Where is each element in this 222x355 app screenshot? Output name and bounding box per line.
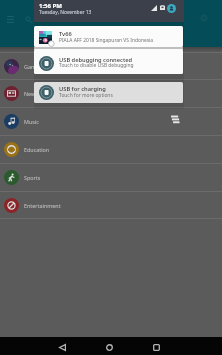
staticText: Music xyxy=(24,118,39,125)
button[interactable]: Music xyxy=(0,107,222,135)
button[interactable]: Recent apps xyxy=(147,338,165,355)
staticText: Touch to disable USB debugging xyxy=(59,62,134,69)
button[interactable]: Sort xyxy=(167,111,183,127)
button[interactable]: Tv66 xyxy=(34,26,183,47)
button[interactable]: User profile xyxy=(167,4,176,13)
staticText: Tuesday, November 13 xyxy=(39,9,92,16)
button[interactable]: Search xyxy=(21,12,36,27)
staticText: PIALA AFF 2018 Singapuran VS Indonesia xyxy=(59,37,154,44)
button[interactable]: Home xyxy=(100,338,118,355)
button[interactable]: Entertainment xyxy=(0,191,222,219)
staticText: Sports xyxy=(24,174,41,181)
button[interactable]: Back xyxy=(53,338,71,355)
button[interactable]: Education xyxy=(0,135,222,163)
button[interactable]: Sports xyxy=(0,163,222,191)
staticText: USB for charging xyxy=(59,85,106,93)
staticText: Games xyxy=(24,63,42,70)
staticText: Tv66 xyxy=(59,30,72,38)
staticText: Entertainment xyxy=(24,202,61,209)
button[interactable]: USB debugging connected xyxy=(34,49,183,74)
staticText: USB debugging connected xyxy=(59,56,133,64)
button[interactable]: Games xyxy=(0,52,222,80)
staticText: News xyxy=(24,90,38,97)
button[interactable]: Open navigation drawer xyxy=(3,12,18,27)
staticText: Education xyxy=(24,146,50,153)
staticText: Touch for more options xyxy=(59,92,113,99)
button[interactable]: USB for charging xyxy=(34,82,183,103)
staticText: 1:56 PM xyxy=(39,2,62,10)
button[interactable]: News xyxy=(0,79,222,107)
button[interactable]: Settings xyxy=(196,10,212,26)
